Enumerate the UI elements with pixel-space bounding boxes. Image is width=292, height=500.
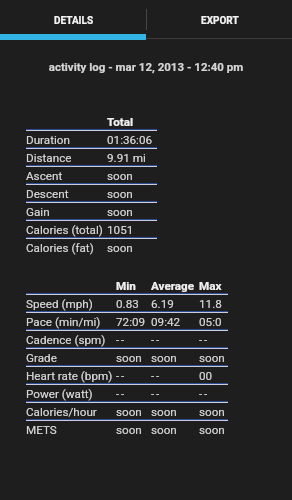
staticText: 11.88 bbox=[199, 297, 228, 311]
staticText: 1051 kcal bbox=[107, 223, 157, 237]
staticText: -- bbox=[151, 387, 199, 401]
staticText: Descent bbox=[26, 187, 107, 201]
staticText: 72:09 bbox=[116, 315, 151, 329]
button[interactable]: DETAILS bbox=[0, 0, 146, 39]
staticText: Distance bbox=[26, 151, 107, 165]
staticText: Ascent bbox=[26, 169, 107, 183]
staticText: -- bbox=[151, 333, 199, 347]
staticText: soon bbox=[116, 351, 151, 365]
staticText: Duration bbox=[26, 133, 107, 147]
staticText: Grade bbox=[26, 351, 116, 365]
staticText: soon bbox=[151, 405, 199, 419]
staticText: METS bbox=[26, 423, 116, 437]
staticText: soon bbox=[107, 241, 157, 255]
staticText: Max bbox=[199, 279, 228, 293]
staticText: -- bbox=[116, 333, 151, 347]
button[interactable]: EXPORT bbox=[146, 0, 292, 39]
staticText: 05:03 bbox=[199, 315, 228, 329]
staticText: soon bbox=[107, 169, 157, 183]
staticText: 6.19 bbox=[151, 297, 199, 311]
staticText: Pace (min/mi) bbox=[26, 315, 116, 329]
staticText: -- bbox=[151, 369, 199, 383]
staticText: soon bbox=[151, 423, 199, 437]
staticText: -- bbox=[199, 387, 228, 401]
staticText: EXPORT bbox=[201, 15, 239, 27]
staticText: soon bbox=[199, 405, 228, 419]
staticText: -- bbox=[199, 333, 228, 347]
staticText: DETAILS bbox=[54, 15, 94, 27]
staticText: Total bbox=[107, 115, 157, 129]
staticText: 09:42 bbox=[151, 315, 199, 329]
staticText: 01:36:06 bbox=[107, 133, 157, 147]
staticText: Calories (total) bbox=[26, 223, 107, 237]
staticText: activity log - mar 12, 2013 - 12:40 pm bbox=[0, 60, 292, 73]
staticText: soon bbox=[199, 423, 228, 437]
staticText: Power (watt) bbox=[26, 387, 116, 401]
staticText: soon bbox=[116, 405, 151, 419]
staticText: soon bbox=[107, 205, 157, 219]
staticText: Min bbox=[116, 279, 151, 293]
staticText: Cadence (spm) bbox=[26, 333, 116, 347]
staticText: -- bbox=[116, 387, 151, 401]
staticText: Average bbox=[151, 279, 199, 293]
staticText: 0.83 bbox=[116, 297, 151, 311]
staticText: soon bbox=[151, 351, 199, 365]
staticText: 00 bbox=[199, 369, 228, 383]
staticText: Heart rate (bpm) bbox=[26, 369, 116, 383]
staticText: 9.91 mi bbox=[107, 151, 157, 165]
staticText: soon bbox=[116, 423, 151, 437]
staticText: -- bbox=[116, 369, 151, 383]
staticText: soon bbox=[107, 187, 157, 201]
staticText: Speed (mph) bbox=[26, 297, 116, 311]
staticText: Gain bbox=[26, 205, 107, 219]
staticText: Calories/hour bbox=[26, 405, 116, 419]
staticText: Calories (fat) bbox=[26, 241, 107, 255]
staticText: soon bbox=[199, 351, 228, 365]
